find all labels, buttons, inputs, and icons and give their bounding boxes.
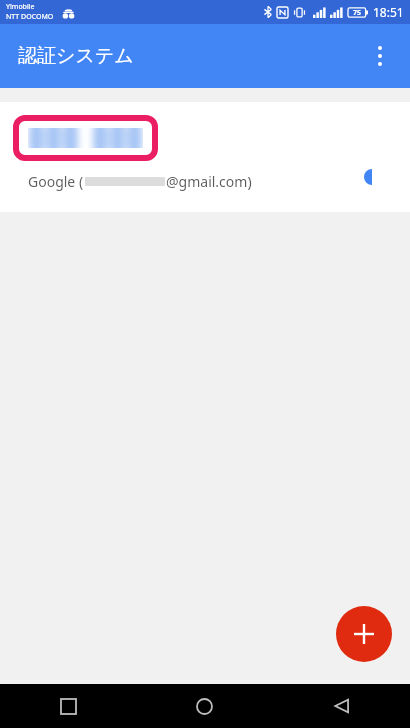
staticText: 認証システム	[18, 44, 134, 68]
button[interactable]: More options	[356, 32, 404, 80]
staticText: 75	[353, 8, 362, 18]
button[interactable]: Back	[273, 684, 410, 728]
staticText: 18:51	[373, 4, 404, 20]
staticText: Y!mobile	[6, 2, 35, 12]
button[interactable]: Recents	[0, 684, 136, 728]
staticText: NTT DOCOMO	[6, 12, 54, 22]
other: Time remaining	[364, 169, 380, 185]
button[interactable]: Add account	[336, 606, 392, 662]
staticText: Google (	[28, 172, 84, 191]
button[interactable]: Home	[136, 684, 273, 728]
button[interactable]: Google (	[0, 102, 410, 212]
staticText: @gmail.com)	[166, 172, 252, 191]
